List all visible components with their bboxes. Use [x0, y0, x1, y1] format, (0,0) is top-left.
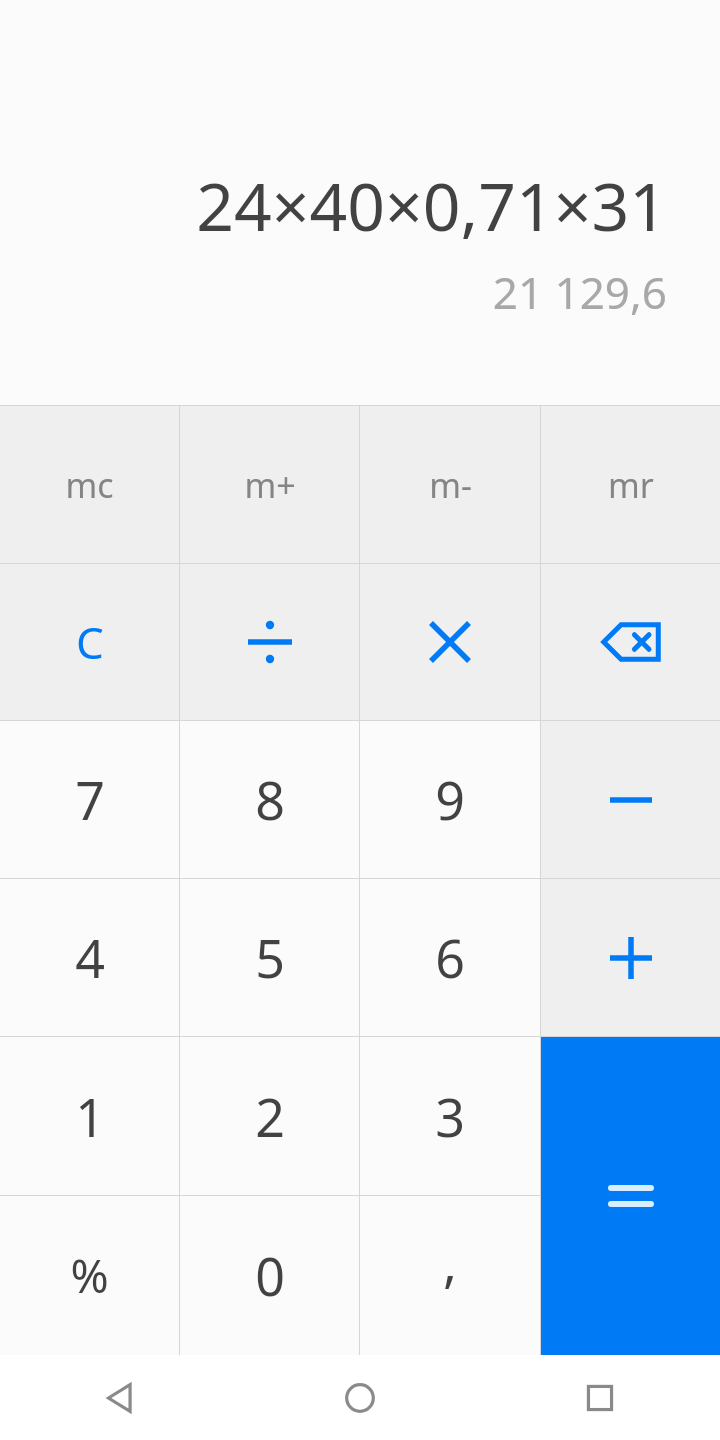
staticText: 3 — [435, 1081, 465, 1152]
button[interactable]: Equals — [541, 1037, 720, 1355]
staticText: % — [70, 1244, 109, 1307]
button[interactable]: Backspace — [541, 564, 720, 720]
staticText: C — [76, 612, 104, 672]
button[interactable]: 1 — [0, 1037, 179, 1195]
button[interactable]: 2 — [180, 1037, 359, 1195]
staticText: mr — [608, 462, 654, 508]
staticText: 24×40×0,71×31 — [196, 160, 667, 250]
button[interactable]: Back — [0, 1355, 240, 1440]
button[interactable]: mc — [0, 406, 179, 563]
button[interactable]: 4 — [0, 879, 179, 1036]
staticText: m- — [429, 462, 472, 508]
button[interactable]: Divide — [180, 564, 359, 720]
staticText: m+ — [244, 462, 296, 508]
button[interactable]: m+ — [180, 406, 359, 563]
staticText: 1 — [75, 1081, 105, 1152]
button[interactable]: 9 — [360, 721, 540, 878]
button[interactable]: , — [360, 1196, 540, 1355]
button[interactable]: Plus — [541, 879, 720, 1036]
button[interactable]: Multiply — [360, 564, 540, 720]
staticText: 21 129,6 — [492, 262, 667, 322]
button[interactable]: 5 — [180, 879, 359, 1036]
button[interactable]: mr — [541, 406, 720, 563]
button[interactable]: C — [0, 564, 179, 720]
button[interactable]: 7 — [0, 721, 179, 878]
button[interactable]: 6 — [360, 879, 540, 1036]
button[interactable]: % — [0, 1196, 179, 1355]
staticText: 0 — [255, 1240, 285, 1311]
button[interactable]: Recent apps — [480, 1355, 720, 1440]
staticText: mc — [65, 462, 114, 508]
staticText: 8 — [255, 764, 285, 835]
button[interactable]: Minus — [541, 721, 720, 878]
staticText: 5 — [255, 922, 285, 993]
button[interactable]: 8 — [180, 721, 359, 878]
staticText: , — [443, 1226, 457, 1297]
staticText: 7 — [75, 764, 105, 835]
staticText: 6 — [435, 922, 465, 993]
button[interactable]: m- — [360, 406, 540, 563]
button[interactable]: Home — [240, 1355, 480, 1440]
staticText: 4 — [75, 922, 105, 993]
staticText: 9 — [435, 764, 465, 835]
button[interactable]: 3 — [360, 1037, 540, 1195]
staticText: 2 — [255, 1081, 285, 1152]
button[interactable]: 0 — [180, 1196, 359, 1355]
